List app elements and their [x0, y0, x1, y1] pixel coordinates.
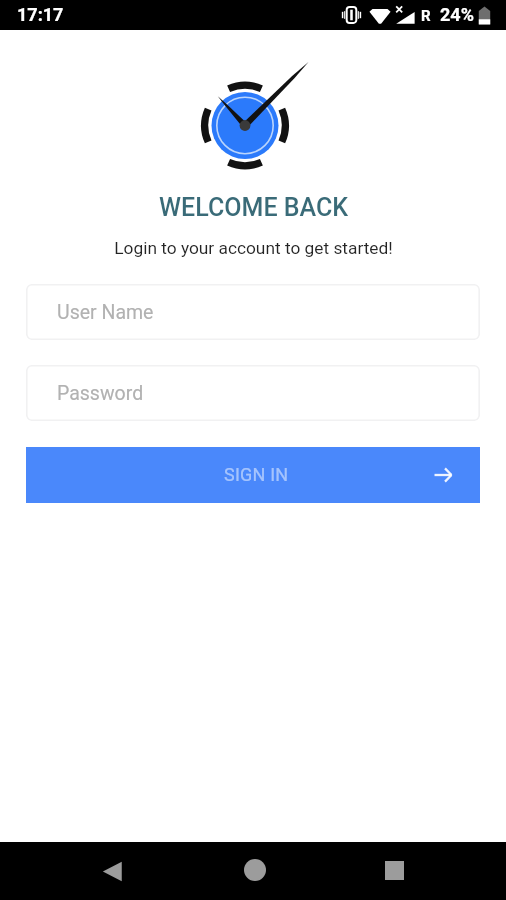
staticText: R [421, 7, 431, 25]
staticText: WELCOME BACK [159, 193, 348, 222]
button[interactable]: SIGN IN [26, 447, 480, 503]
button[interactable]: Recent apps [370, 846, 418, 894]
button[interactable]: User Name [26, 284, 480, 340]
staticText: User Name [57, 301, 154, 324]
button[interactable]: Home [231, 846, 279, 894]
button[interactable]: Back [88, 847, 136, 895]
staticText: SIGN IN [224, 464, 289, 485]
button[interactable]: Password [26, 365, 480, 421]
staticText: 17:17 [17, 4, 64, 25]
staticText: Password [57, 382, 144, 405]
staticText: 24% [440, 4, 474, 25]
staticText: Login to your account to get started! [114, 238, 393, 258]
